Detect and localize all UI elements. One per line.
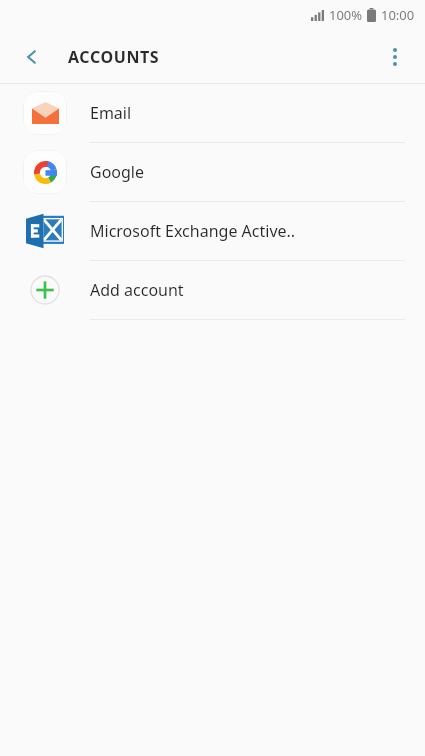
button[interactable]: Email: [0, 84, 425, 142]
other: Add account: [30, 275, 60, 305]
button[interactable]: Add account: [0, 261, 425, 319]
button[interactable]: More options: [374, 36, 416, 78]
staticText: Microsoft Exchange Active..: [90, 220, 296, 242]
staticText: Add account: [90, 279, 184, 301]
button[interactable]: Microsoft Exchange Active..: [0, 202, 425, 260]
staticText: ACCOUNTS: [68, 46, 160, 68]
staticText: 100%: [329, 6, 363, 24]
staticText: Email: [90, 102, 132, 124]
staticText: Google: [90, 161, 145, 183]
button[interactable]: Back: [12, 37, 52, 77]
staticText: 10:00: [381, 6, 415, 24]
button[interactable]: Google: [0, 143, 425, 201]
